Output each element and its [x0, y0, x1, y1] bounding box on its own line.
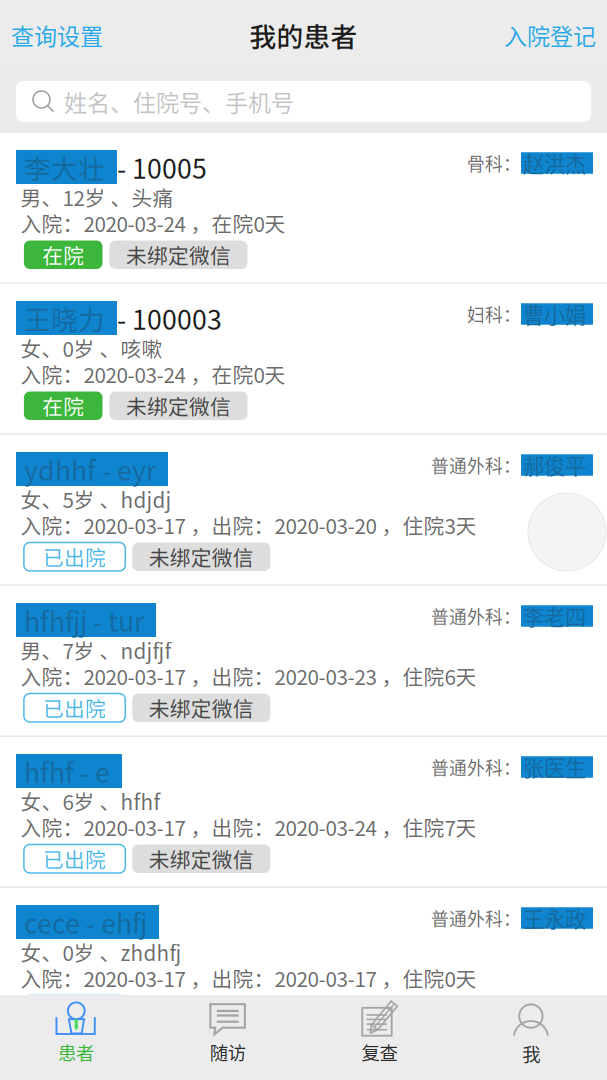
staticText: 未绑定微信 — [149, 693, 254, 723]
staticText: 普通外科： — [431, 603, 521, 629]
staticText: 入院登记 — [504, 18, 596, 52]
staticText: 在院 — [42, 391, 84, 421]
staticText: 骨科： — [467, 150, 521, 176]
staticText: cece - ehfj — [24, 903, 147, 941]
staticText: 入院：2020-03-24 ，在院0天 — [20, 359, 285, 389]
button[interactable]: 患者 — [0, 995, 152, 1080]
staticText: 女、0岁 、zhdhfj — [20, 937, 181, 967]
staticText: 未绑定微信 — [149, 844, 254, 874]
staticText: 我的患者 — [249, 16, 357, 54]
staticText: 女、5岁 、hdjdj — [20, 484, 171, 514]
staticText: 曹小娟 — [523, 299, 591, 329]
staticText: 王永政 — [523, 903, 591, 933]
button[interactable]: 查询设置 — [0, 5, 114, 65]
button[interactable]: 复查 — [303, 995, 455, 1080]
staticText: 普通外科： — [431, 754, 521, 780]
staticText: 未绑定微信 — [126, 391, 231, 421]
staticText: 查询设置 — [11, 18, 103, 52]
button[interactable]: 李大壮 — [0, 133, 607, 282]
button[interactable]: 王晓力 — [0, 284, 607, 433]
button[interactable]: ydhhf - eyr — [0, 435, 607, 584]
staticText: 已出院 — [43, 995, 106, 1025]
staticText: 姓名、住院号、手机号 — [64, 85, 294, 118]
button[interactable]: 随访 — [152, 995, 304, 1080]
staticText: 入院：2020-03-17 ，出院：2020-03-17 ，住院0天 — [20, 963, 476, 993]
staticText: 入院：2020-03-17 ，出院：2020-03-23 ，住院6天 — [20, 661, 476, 691]
staticText: 入院：2020-03-17 ，出院：2020-03-24 ，住院7天 — [20, 812, 476, 842]
staticText: 已出院 — [43, 844, 106, 874]
staticText: 已出院 — [43, 542, 106, 572]
staticText: 未绑定微信 — [126, 240, 231, 270]
staticText: 随访 — [210, 1039, 246, 1065]
staticText: 患者 — [58, 1039, 94, 1065]
button[interactable]: hfhfjj - tur — [0, 586, 607, 735]
staticText: 未绑定微信 — [149, 995, 254, 1025]
staticText: 普通外科： — [431, 905, 521, 931]
staticText: 赵洪杰 — [523, 148, 591, 178]
staticText: 王晓力 — [24, 299, 105, 337]
staticText: ydhhf - eyr — [24, 450, 156, 488]
staticText: 李老四 — [523, 601, 591, 631]
staticText: 女、0岁 、咳嗽 — [20, 333, 162, 363]
staticText: - 10005 — [117, 148, 207, 186]
staticText: 在院 — [42, 240, 84, 270]
button[interactable]: 入院登记 — [493, 5, 607, 65]
staticText: hfhfjj - tur — [24, 601, 144, 639]
staticText: 未绑定微信 — [149, 542, 254, 572]
staticText: 已出院 — [43, 693, 106, 723]
button[interactable]: hfhf - e — [0, 737, 607, 886]
staticText: 男、7岁 、ndjfjf — [20, 635, 171, 665]
staticText: 普通外科： — [431, 452, 521, 478]
staticText: hfhf - e — [24, 752, 110, 790]
staticText: 入院：2020-03-24 ，在院0天 — [20, 208, 285, 238]
staticText: 李大壮 — [24, 148, 105, 186]
staticText: 男、12岁 、头痛 — [20, 182, 173, 212]
staticText: 入院：2020-03-17 ，出院：2020-03-20 ，住院3天 — [20, 510, 476, 540]
staticText: 妇科： — [467, 301, 521, 327]
button[interactable]: cece - ehfj — [0, 888, 607, 1037]
button[interactable]: 我 — [455, 995, 607, 1080]
staticText: 复查 — [361, 1039, 397, 1065]
staticText: 我 — [522, 1040, 540, 1067]
button[interactable]: 搜索 姓名、住院号、手机号 — [16, 81, 591, 122]
staticText: 张医生 — [523, 752, 591, 782]
staticText: - 100003 — [117, 299, 222, 337]
staticText: 女、6岁 、hfhf — [20, 786, 160, 816]
staticText: 郝俊平 — [523, 450, 591, 480]
